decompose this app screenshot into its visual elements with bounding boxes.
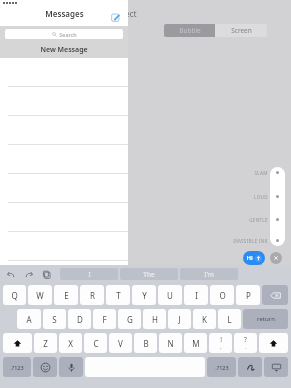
button[interactable] xyxy=(0,116,128,145)
button[interactable] xyxy=(0,232,128,261)
staticText: I xyxy=(195,290,198,301)
button[interactable]: New Message xyxy=(109,11,121,23)
staticText: . xyxy=(245,344,247,351)
button[interactable]: E xyxy=(54,285,78,305)
button[interactable]: I'm xyxy=(180,268,238,280)
staticText: D xyxy=(77,314,83,325)
staticText: O xyxy=(219,290,226,301)
staticText: , xyxy=(220,344,222,351)
button[interactable]: P xyxy=(236,285,260,305)
button[interactable]: U xyxy=(158,285,182,305)
staticText: Screen xyxy=(231,26,252,35)
button[interactable]: S xyxy=(43,309,66,329)
staticText: G xyxy=(127,314,133,325)
button[interactable]: Shift xyxy=(259,333,288,353)
button[interactable]: Paste xyxy=(40,268,53,281)
button[interactable]: ! xyxy=(209,333,232,353)
button[interactable]: V xyxy=(109,333,132,353)
staticText: K xyxy=(202,314,207,325)
staticText: L xyxy=(227,314,232,325)
button[interactable]: W xyxy=(28,285,52,305)
button[interactable]: SLAM xyxy=(200,168,268,177)
staticText: H xyxy=(152,314,158,325)
button[interactable]: Dictation xyxy=(59,357,83,377)
staticText: B xyxy=(143,338,149,349)
staticText: Z xyxy=(43,338,48,349)
staticText: P xyxy=(246,290,251,301)
staticText: F xyxy=(102,314,107,325)
button[interactable]: G xyxy=(118,309,141,329)
button[interactable]: The xyxy=(120,268,178,280)
button[interactable]: Screen xyxy=(215,24,267,37)
staticText: C xyxy=(93,338,99,349)
staticText: ? xyxy=(244,335,247,344)
button[interactable]: B xyxy=(134,333,157,353)
staticText: W xyxy=(36,290,44,301)
button[interactable]: Hide keyboard xyxy=(264,357,288,377)
staticText: I xyxy=(88,270,91,279)
button[interactable]: H xyxy=(143,309,166,329)
staticText: Search xyxy=(59,31,77,38)
button[interactable]: Emoji xyxy=(33,357,57,377)
button[interactable] xyxy=(0,203,128,232)
staticText: The xyxy=(143,270,155,279)
staticText: Send with effect xyxy=(72,8,137,20)
button[interactable]: INVISIBLE INK xyxy=(200,236,268,245)
button[interactable]: D xyxy=(68,309,91,329)
staticText: Bubble xyxy=(179,26,201,35)
button[interactable]: Shift xyxy=(3,333,32,353)
staticText: V xyxy=(118,338,123,349)
staticText: .?123 xyxy=(215,364,229,371)
button[interactable]: N xyxy=(159,333,182,353)
button[interactable]: Bubble xyxy=(164,24,215,37)
button[interactable]: ? xyxy=(234,333,257,353)
button[interactable]: L xyxy=(218,309,241,329)
staticText: New Message xyxy=(40,45,88,55)
button[interactable]: Search xyxy=(5,29,123,39)
button[interactable]: return xyxy=(243,309,288,329)
staticText: U xyxy=(167,290,173,301)
button[interactable]: Handwriting xyxy=(238,357,262,377)
button[interactable]: I xyxy=(60,268,118,280)
staticText: Q xyxy=(11,290,18,301)
staticText: SLAM xyxy=(254,170,268,176)
button[interactable]: LOUD xyxy=(200,192,268,201)
button[interactable]: Y xyxy=(132,285,156,305)
button[interactable] xyxy=(0,87,128,116)
button[interactable]: R xyxy=(80,285,104,305)
button[interactable]: Z xyxy=(34,333,57,353)
button[interactable]: .?123 xyxy=(3,357,31,377)
button[interactable]: K xyxy=(193,309,216,329)
button[interactable]: Close xyxy=(270,252,282,264)
button[interactable]: GENTLE xyxy=(200,215,268,224)
staticText: J xyxy=(178,314,181,325)
staticText: Y xyxy=(142,290,147,301)
staticText: ! xyxy=(220,335,222,344)
button[interactable]: Backspace xyxy=(262,285,288,305)
staticText: return xyxy=(257,315,275,323)
staticText: .?123 xyxy=(10,364,24,371)
button[interactable] xyxy=(0,174,128,203)
button[interactable] xyxy=(0,58,128,87)
button[interactable]: Q xyxy=(3,285,26,305)
button[interactable]: C xyxy=(84,333,107,353)
staticText: GENTLE xyxy=(249,217,268,223)
staticText: S xyxy=(52,314,57,325)
button[interactable]: M xyxy=(184,333,207,353)
button[interactable]: F xyxy=(93,309,116,329)
button[interactable]: J xyxy=(168,309,191,329)
button[interactable]: X xyxy=(59,333,82,353)
staticText: Messages xyxy=(45,8,84,19)
button[interactable]: .?123 xyxy=(207,357,236,377)
button[interactable]: I xyxy=(184,285,208,305)
staticText: LOUD xyxy=(254,194,268,200)
button[interactable]: O xyxy=(210,285,234,305)
button[interactable] xyxy=(0,145,128,174)
button[interactable]: A xyxy=(17,309,41,329)
button[interactable]: Redo xyxy=(22,268,35,281)
button[interactable]: T xyxy=(106,285,130,305)
button[interactable]: Send Hi with effect xyxy=(243,251,265,265)
staticText: T xyxy=(116,290,121,301)
button[interactable]: Undo xyxy=(4,268,17,281)
